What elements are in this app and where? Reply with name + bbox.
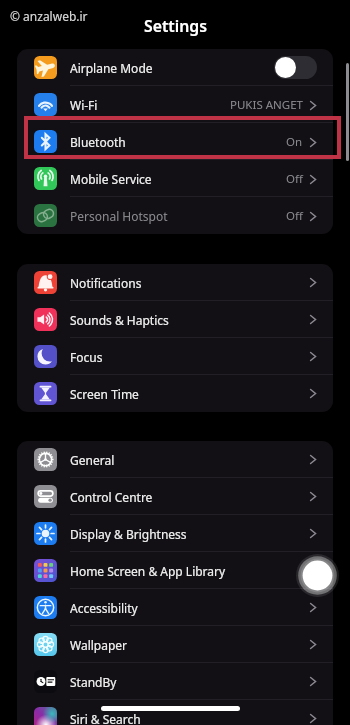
button[interactable]: Airplane Mode	[17, 49, 333, 86]
staticText: PUKIS ANGET	[230, 97, 303, 113]
staticText: On	[286, 134, 303, 150]
button[interactable]: Personal Hotspot	[17, 197, 333, 234]
button[interactable]: Sounds & Haptics	[17, 301, 333, 338]
staticText: Accessibility	[70, 600, 138, 616]
staticText: Sounds & Haptics	[70, 312, 169, 328]
staticText: Focus	[70, 349, 103, 365]
button[interactable]: Siri & Search	[17, 700, 333, 725]
staticText: Siri & Search	[70, 711, 141, 725]
staticText: Display & Brightness	[70, 526, 187, 542]
staticText: Personal Hotspot	[70, 208, 168, 224]
button[interactable]: Control Centre	[17, 478, 333, 515]
button[interactable]: Notifications	[17, 264, 333, 301]
button[interactable]: Home Screen & App Library	[17, 552, 333, 589]
staticText: Bluetooth	[70, 134, 126, 150]
staticText: Off	[286, 171, 303, 187]
staticText: StandBy	[70, 674, 117, 690]
button[interactable]: Display & Brightness	[17, 515, 333, 552]
staticText: Wi-Fi	[70, 97, 98, 113]
staticText: Control Centre	[70, 489, 153, 505]
button[interactable]: StandBy	[17, 663, 333, 700]
staticText: Airplane Mode	[70, 60, 153, 76]
staticText: General	[70, 452, 115, 468]
staticText: © anzalweb.ir	[10, 8, 88, 24]
button[interactable]: Airplane Mode toggle	[274, 56, 317, 79]
button[interactable]: Screen Time	[17, 375, 333, 412]
button[interactable]: Wi-Fi	[17, 86, 333, 123]
button[interactable]: AssistiveTouch	[296, 554, 339, 597]
button[interactable]: General	[17, 441, 333, 478]
staticText: Home Screen & App Library	[70, 563, 226, 579]
staticText: Mobile Service	[70, 171, 152, 187]
button[interactable]: Mobile Service	[17, 160, 333, 197]
button[interactable]: Wallpaper	[17, 626, 333, 663]
button[interactable]: Bluetooth	[17, 123, 333, 160]
staticText: Notifications	[70, 275, 142, 291]
staticText: Wallpaper	[70, 637, 128, 653]
staticText: Off	[286, 208, 303, 224]
staticText: Screen Time	[70, 386, 139, 402]
button[interactable]: Accessibility	[17, 589, 333, 626]
staticText: Settings	[144, 15, 207, 37]
button[interactable]: Focus	[17, 338, 333, 375]
